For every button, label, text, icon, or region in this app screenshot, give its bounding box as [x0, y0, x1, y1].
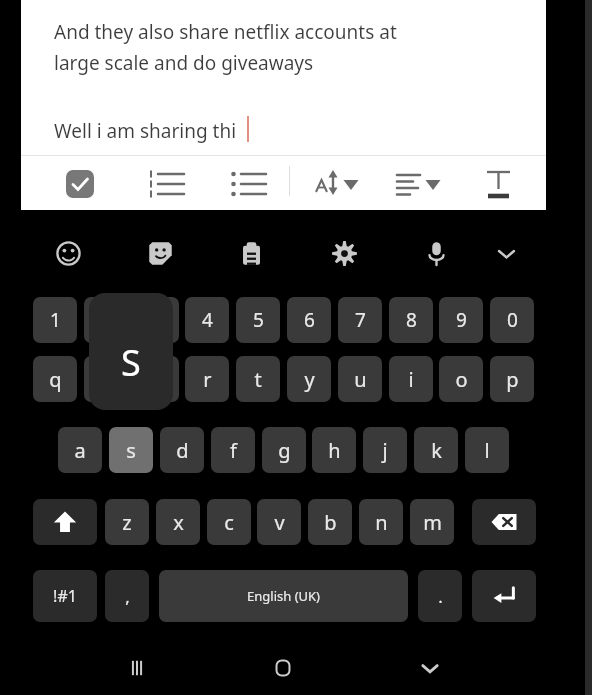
staticText: o: [455, 366, 468, 393]
button[interactable]: .: [418, 570, 462, 622]
staticText: z: [122, 509, 132, 536]
staticText: g: [278, 437, 291, 464]
button[interactable]: 2: [84, 297, 128, 343]
button[interactable]: Emoji: [46, 231, 90, 275]
button[interactable]: t: [236, 356, 280, 402]
staticText: m: [423, 509, 442, 536]
button[interactable]: u: [338, 356, 382, 402]
button[interactable]: y: [287, 356, 331, 402]
button[interactable]: English (UK): [159, 570, 408, 622]
staticText: And they also share netflix accounts at: [54, 19, 397, 45]
button[interactable]: 7: [338, 297, 382, 343]
staticText: s: [126, 437, 136, 464]
button[interactable]: 8: [389, 297, 433, 343]
button[interactable]: n: [359, 499, 403, 545]
button[interactable]: Numbered list: [149, 167, 189, 201]
button[interactable]: f: [211, 427, 255, 473]
button[interactable]: z: [105, 499, 149, 545]
button[interactable]: Text size: [315, 167, 369, 201]
staticText: y: [304, 366, 315, 393]
staticText: u: [354, 366, 367, 393]
staticText: c: [224, 509, 234, 536]
staticText: d: [176, 437, 189, 464]
button[interactable]: c: [207, 499, 251, 545]
staticText: Well i am sharing thi: [54, 118, 237, 144]
button[interactable]: 9: [439, 297, 483, 343]
button[interactable]: b: [308, 499, 352, 545]
staticText: k: [431, 437, 442, 464]
button[interactable]: S key preview: [89, 293, 173, 410]
button[interactable]: 4: [185, 297, 229, 343]
button[interactable]: Stickers: [138, 231, 182, 275]
staticText: a: [74, 437, 86, 464]
button[interactable]: Hide keyboard: [404, 645, 456, 691]
button[interactable]: Alignment: [397, 167, 451, 201]
button[interactable]: o: [439, 356, 483, 402]
button[interactable]: Checklist: [66, 167, 106, 201]
button[interactable]: k: [414, 427, 458, 473]
button[interactable]: p: [490, 356, 534, 402]
button[interactable]: r: [185, 356, 229, 402]
staticText: 0: [507, 307, 518, 333]
button[interactable]: 6: [287, 297, 331, 343]
button[interactable]: h: [312, 427, 356, 473]
button[interactable]: ,: [105, 570, 149, 622]
button[interactable]: 3: [135, 297, 179, 343]
staticText: f: [230, 437, 237, 464]
button[interactable]: Recent apps: [111, 645, 163, 691]
staticText: b: [324, 509, 337, 536]
button[interactable]: s: [109, 427, 153, 473]
staticText: x: [173, 509, 184, 536]
staticText: 6: [304, 307, 315, 333]
button[interactable]: g: [262, 427, 306, 473]
staticText: 9: [456, 307, 467, 333]
button[interactable]: More options: [484, 231, 528, 275]
staticText: v: [274, 509, 285, 536]
button[interactable]: Shift: [33, 499, 97, 545]
staticText: S: [121, 338, 141, 387]
staticText: r: [203, 366, 212, 393]
button[interactable]: e: [135, 356, 179, 402]
staticText: 7: [355, 307, 366, 333]
button[interactable]: x: [156, 499, 200, 545]
button[interactable]: !#1: [33, 570, 97, 622]
button[interactable]: Bulleted list: [231, 167, 271, 201]
button[interactable]: i: [389, 356, 433, 402]
button[interactable]: m: [410, 499, 454, 545]
staticText: ,: [125, 585, 130, 608]
staticText: t: [254, 366, 262, 393]
button[interactable]: Home: [257, 645, 309, 691]
button[interactable]: Voice input: [414, 231, 458, 275]
button[interactable]: w: [84, 356, 128, 402]
staticText: 1: [50, 307, 61, 333]
button[interactable]: Backspace: [472, 499, 536, 545]
button[interactable]: Clipboard: [229, 231, 273, 275]
staticText: q: [49, 366, 62, 393]
button[interactable]: 5: [236, 297, 280, 343]
button[interactable]: 0: [490, 297, 534, 343]
button[interactable]: Keyboard settings: [322, 231, 366, 275]
button[interactable]: 1: [33, 297, 77, 343]
button[interactable]: v: [257, 499, 301, 545]
button[interactable]: a: [58, 427, 102, 473]
staticText: 4: [202, 307, 213, 333]
button[interactable]: d: [160, 427, 204, 473]
staticText: .: [438, 585, 443, 608]
staticText: p: [506, 366, 519, 393]
button[interactable]: l: [465, 427, 509, 473]
button[interactable]: Enter: [472, 570, 536, 622]
button[interactable]: q: [33, 356, 77, 402]
staticText: l: [484, 437, 490, 464]
staticText: n: [375, 509, 388, 536]
staticText: English (UK): [247, 587, 320, 605]
staticText: h: [328, 437, 341, 464]
button[interactable]: Text format: [484, 167, 518, 201]
staticText: j: [382, 437, 388, 464]
button[interactable]: j: [363, 427, 407, 473]
staticText: i: [408, 366, 414, 393]
staticText: 5: [253, 307, 264, 333]
